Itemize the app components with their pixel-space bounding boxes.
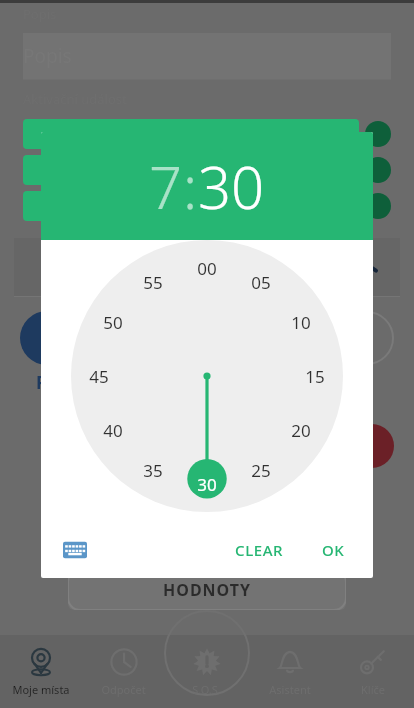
button[interactable]: Moje místa [0,635,82,708]
staticText: 25 [251,459,271,482]
button[interactable]: CLEAR [225,532,294,568]
button[interactable]: 55 [136,265,170,299]
button[interactable]: 35 [136,453,170,487]
staticText: OK [322,540,345,560]
button[interactable]: 00 [190,251,224,285]
staticText: CLEAR [235,540,284,560]
staticText: 15 [305,365,325,388]
button[interactable]: OK [312,532,355,568]
button[interactable]: 30 [198,147,265,226]
button[interactable]: 7 [149,147,183,226]
staticText: 35 [143,459,163,482]
staticText: 05 [251,271,271,294]
staticText: S.O.S. [192,682,221,697]
button[interactable]: 50 [96,305,130,339]
button[interactable]: 15 [298,359,332,393]
button[interactable]: 25 [244,453,278,487]
staticText: 20 [291,419,311,442]
staticText: 10 [291,311,311,334]
button[interactable]: 30 [190,467,224,501]
button[interactable]: 20 [284,413,318,447]
staticText: 55 [143,271,163,294]
staticText: 00 [197,257,217,280]
button[interactable]: 05 [244,265,278,299]
staticText: 30 [197,473,217,496]
staticText: 40 [103,419,123,442]
button[interactable]: 45 [82,359,116,393]
button[interactable]: Switch to keyboard input [55,530,95,570]
button[interactable]: S.O.S. [165,635,248,708]
staticText: 50 [103,311,123,334]
button[interactable]: HODNOTY [68,570,346,610]
button[interactable]: 40 [96,413,130,447]
staticText: : [183,147,198,226]
staticText: HODNOTY [163,579,252,601]
staticText: Moje místa [12,682,70,697]
staticText: 45 [89,365,109,388]
staticText: Po [36,371,58,394]
button[interactable]: 10 [284,305,318,339]
